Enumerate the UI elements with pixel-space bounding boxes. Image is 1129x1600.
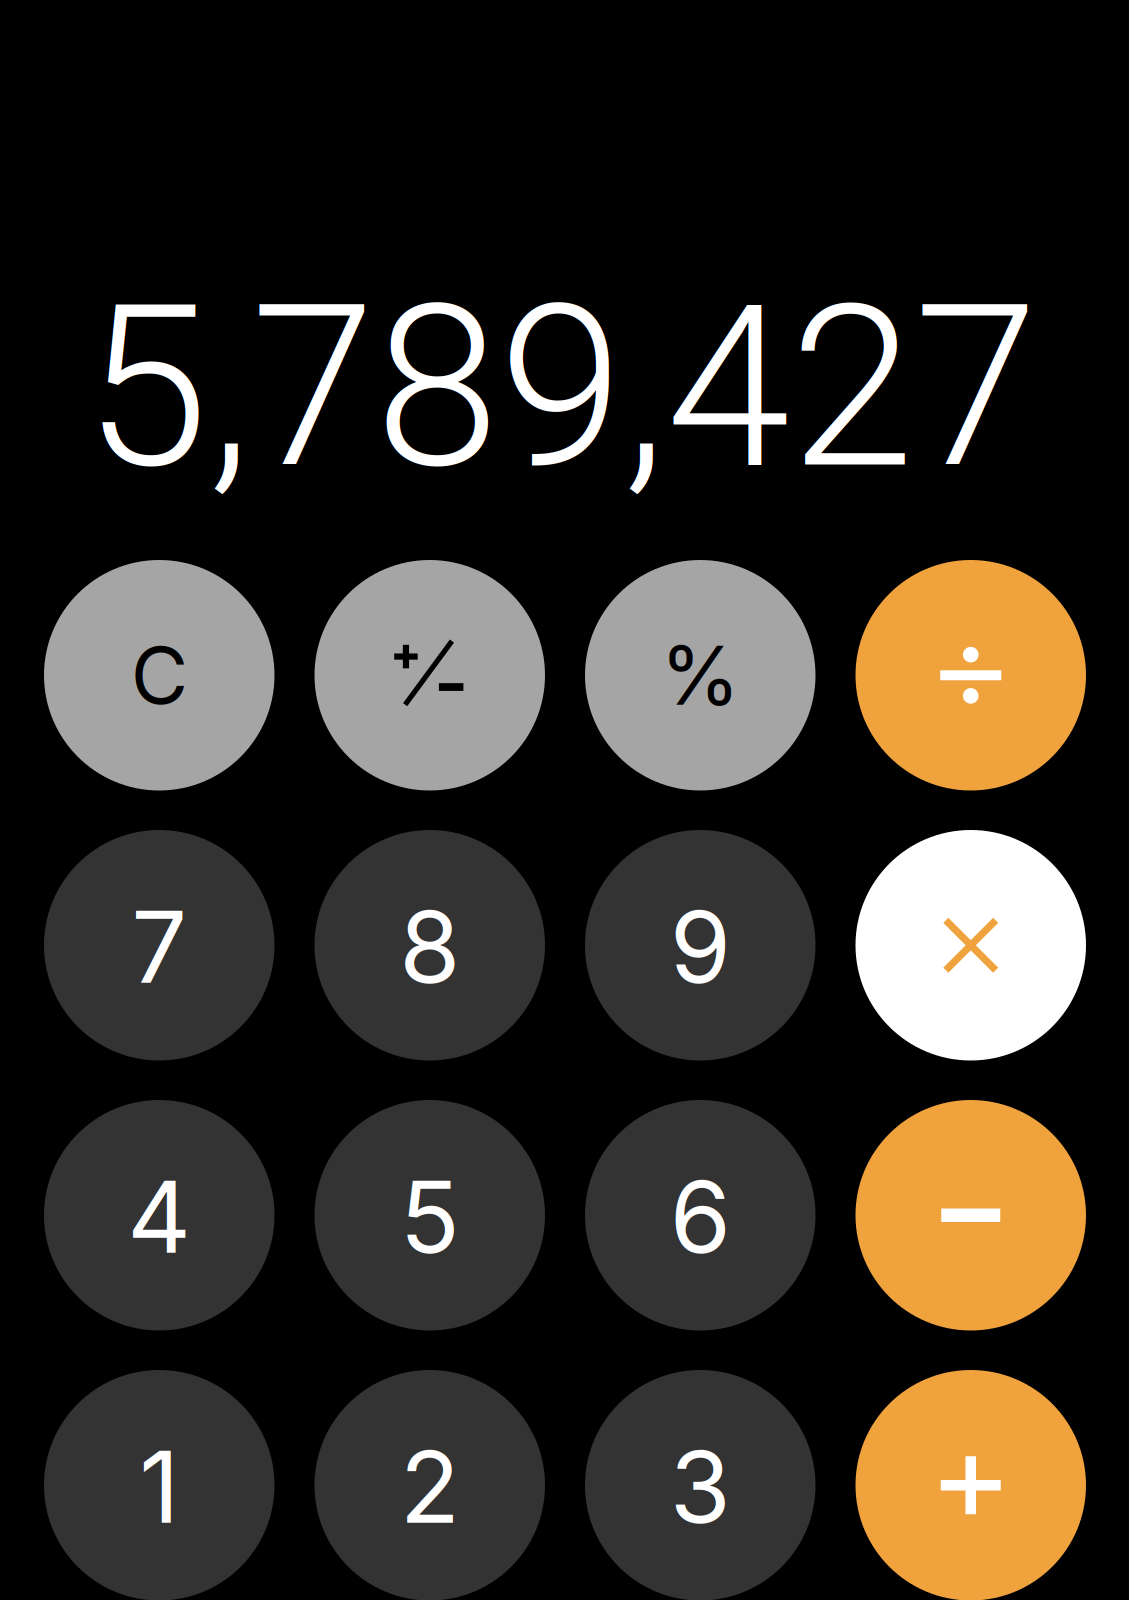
staticText: 7 <box>131 887 187 1006</box>
button[interactable]: 5 <box>314 1100 545 1330</box>
staticText: 1 <box>139 1427 179 1546</box>
staticText: 4 <box>127 1157 191 1276</box>
staticText: 8 <box>399 887 460 1006</box>
staticText: 5 <box>400 1157 460 1276</box>
staticText: % <box>660 626 740 724</box>
button[interactable]: C <box>44 560 274 790</box>
button[interactable]: 6 <box>585 1100 815 1330</box>
button[interactable]: 9 <box>585 830 815 1060</box>
button[interactable]: Multiply <box>855 830 1086 1060</box>
button[interactable]: % <box>585 560 815 790</box>
staticText: 9 <box>670 887 731 1006</box>
staticText: 6 <box>670 1157 731 1276</box>
button[interactable]: 4 <box>44 1100 274 1330</box>
button[interactable]: Subtract <box>855 1100 1086 1330</box>
button[interactable]: Add <box>855 1370 1086 1600</box>
button[interactable]: 2 <box>314 1370 545 1600</box>
staticText: 3 <box>670 1427 731 1546</box>
button[interactable]: 1 <box>44 1370 274 1600</box>
staticText: 2 <box>400 1427 460 1546</box>
staticText: 5,789,427 <box>84 257 1038 519</box>
button[interactable]: 7 <box>44 830 274 1060</box>
button[interactable]: 3 <box>585 1370 815 1600</box>
button[interactable]: Divide <box>855 560 1086 790</box>
staticText: C <box>131 628 188 723</box>
button[interactable]: Plus Minus <box>314 560 545 790</box>
button[interactable]: 8 <box>314 830 545 1060</box>
